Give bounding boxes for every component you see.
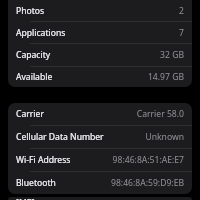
- staticText: 98:46:8A:51:AE:E7: [112, 154, 184, 166]
- staticText: IMEI: [16, 197, 35, 200]
- button[interactable]: Cellular Data Number: [8, 126, 192, 148]
- staticText: Available: [16, 71, 53, 83]
- button[interactable]: Capacity: [8, 44, 192, 66]
- button[interactable]: Photos: [8, 0, 192, 21]
- staticText: Carrier 58.0: [136, 108, 184, 120]
- staticText: Applications: [16, 27, 66, 39]
- button[interactable]: IMEI: [8, 197, 192, 200]
- staticText: Photos: [16, 5, 45, 17]
- staticText: 2: [179, 5, 184, 17]
- staticText: 14.97 GB: [147, 71, 184, 83]
- staticText: Wi-Fi Address: [16, 154, 71, 166]
- button[interactable]: Available: [8, 67, 192, 87]
- staticText: 98:46:8A:59:D9:EB: [111, 177, 184, 189]
- staticText: Carrier: [16, 108, 44, 120]
- staticText: Unknown: [145, 131, 184, 143]
- button[interactable]: Bluetooth: [8, 172, 192, 194]
- staticText: 7: [179, 27, 184, 39]
- staticText: Bluetooth: [16, 177, 56, 189]
- button[interactable]: Applications: [8, 22, 192, 43]
- staticText: Capacity: [16, 49, 51, 61]
- button[interactable]: Wi-Fi Address: [8, 149, 192, 171]
- button[interactable]: Carrier: [8, 103, 192, 125]
- staticText: Cellular Data Number: [16, 131, 104, 143]
- staticText: 32 GB: [160, 49, 184, 61]
